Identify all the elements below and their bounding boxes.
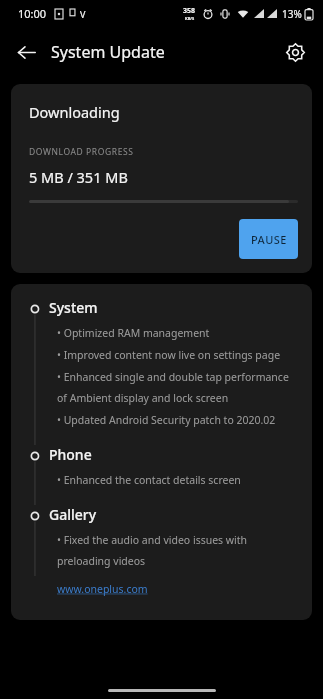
staticText: System xyxy=(49,298,98,317)
staticText: System Update xyxy=(51,41,165,63)
button[interactable]: System xyxy=(11,284,312,620)
staticText: www.oneplus.com xyxy=(57,582,148,596)
staticText: PAUSE xyxy=(251,232,287,247)
staticText: • Fixed the audio and video issues with … xyxy=(57,533,298,568)
staticText: Gallery xyxy=(49,505,97,524)
staticText: 5 MB / 351 MB xyxy=(29,167,128,187)
staticText: 10:00 xyxy=(18,6,47,21)
staticText: 358 xyxy=(183,6,196,16)
staticText: Downloading xyxy=(29,102,120,122)
button[interactable]: www.oneplus.com xyxy=(57,582,148,596)
staticText: • Improved content now live on settings … xyxy=(57,348,281,362)
button[interactable]: Back xyxy=(6,32,46,72)
staticText: • Optimized RAM management xyxy=(57,326,210,340)
staticText: KB/S xyxy=(185,16,195,21)
staticText: • Enhanced the contact details screen xyxy=(57,473,241,487)
staticText: V xyxy=(80,8,86,20)
staticText: • Enhanced single and double tap perform… xyxy=(57,370,298,405)
button[interactable]: Downloading xyxy=(11,84,312,273)
staticText: 13% xyxy=(282,7,302,21)
staticText: • Updated Android Security patch to 2020… xyxy=(57,413,276,427)
staticText: Phone xyxy=(49,445,92,464)
button[interactable]: PAUSE xyxy=(239,219,298,259)
button[interactable]: Settings xyxy=(275,32,315,72)
staticText: DOWNLOAD PROGRESS xyxy=(29,146,134,158)
